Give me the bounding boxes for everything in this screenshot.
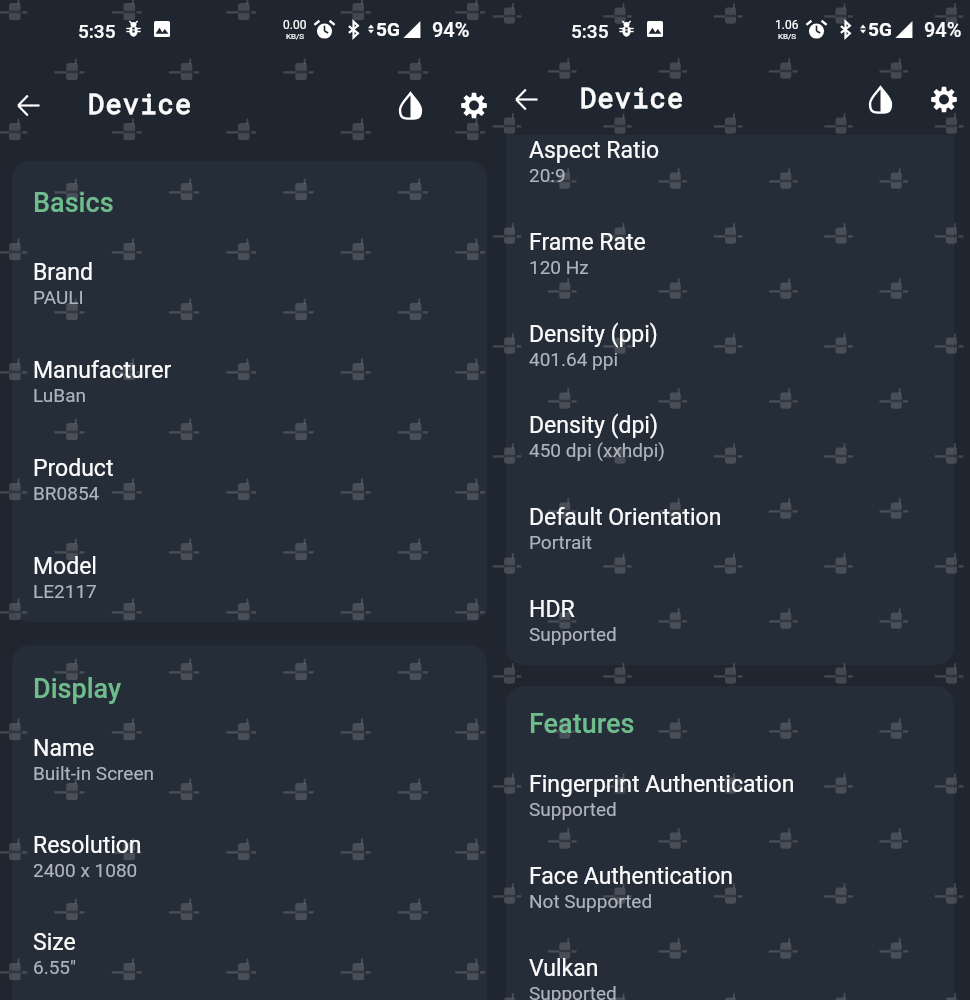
staticText: 5G (868, 18, 892, 40)
staticText: LE2117 (33, 580, 97, 602)
button[interactable]: Back (499, 72, 553, 126)
staticText: 401.64 ppi (529, 348, 619, 370)
staticText: Vulkan (529, 955, 599, 982)
staticText: 94% (432, 18, 470, 41)
button[interactable]: Face Authentication (529, 863, 954, 912)
button[interactable]: Vulkan (529, 955, 954, 1000)
staticText: 5G (376, 18, 400, 40)
staticText: Face Authentication (529, 863, 734, 890)
staticText: KB/S (286, 32, 305, 41)
staticText: Manufacturer (33, 357, 172, 384)
button[interactable]: Product (33, 455, 487, 504)
button[interactable]: Manufacturer (33, 357, 487, 406)
staticText: 6.55" (33, 956, 77, 978)
staticText: Model (33, 553, 97, 580)
staticText: Fingerprint Authentication (529, 771, 795, 798)
staticText: Not Supported (529, 890, 653, 912)
staticText: PAULI (33, 286, 84, 308)
staticText: Portrait (529, 531, 593, 553)
staticText: Supported (529, 623, 617, 645)
button[interactable]: Model (33, 553, 487, 602)
staticText: LuBan (33, 384, 86, 406)
staticText: HDR (529, 596, 575, 623)
button[interactable]: Name (33, 735, 487, 784)
staticText: 450 dpi (xxhdpi) (529, 439, 665, 461)
button[interactable]: Theme (385, 80, 435, 130)
button[interactable]: Frame Rate (529, 229, 954, 278)
staticText: Resolution (33, 832, 142, 859)
button[interactable]: Resolution (33, 832, 487, 881)
staticText: Display (33, 673, 122, 705)
button[interactable]: Back (1, 78, 55, 132)
button[interactable]: Default Orientation (529, 504, 954, 553)
staticText: Built-in Screen (33, 762, 154, 784)
staticText: Name (33, 735, 95, 762)
staticText: Default Orientation (529, 504, 722, 531)
button[interactable]: Density (dpi) (529, 412, 954, 461)
staticText: Device (88, 86, 193, 122)
staticText: 94% (924, 18, 962, 41)
staticText: 20:9 (529, 164, 566, 186)
staticText: 2400 x 1080 (33, 859, 138, 881)
staticText: Features (529, 708, 635, 740)
button[interactable]: Brand (33, 259, 487, 308)
staticText: Product (33, 455, 114, 482)
staticText: Frame Rate (529, 229, 646, 256)
staticText: Basics (33, 187, 114, 219)
staticText: Supported (529, 982, 617, 1000)
staticText: 1.06 (775, 18, 799, 32)
button[interactable]: Theme (855, 74, 905, 124)
staticText: KB/S (778, 32, 797, 41)
staticText: Density (ppi) (529, 321, 658, 348)
staticText: 5:35 (78, 20, 116, 42)
staticText: Size (33, 929, 76, 956)
button[interactable]: Aspect Ratio (529, 137, 954, 186)
staticText: Aspect Ratio (529, 137, 660, 164)
button[interactable]: Settings (449, 80, 499, 130)
button[interactable]: Density (ppi) (529, 321, 954, 370)
staticText: 0.00 (283, 18, 307, 32)
staticText: BR0854 (33, 482, 100, 504)
button[interactable]: Settings (919, 74, 969, 124)
staticText: 120 Hz (529, 256, 589, 278)
staticText: 5:35 (571, 20, 609, 42)
staticText: Device (580, 80, 685, 116)
button[interactable]: Fingerprint Authentication (529, 771, 954, 820)
staticText: Supported (529, 798, 617, 820)
staticText: Density (dpi) (529, 412, 658, 439)
button[interactable]: HDR (529, 596, 954, 645)
staticText: Brand (33, 259, 93, 286)
button[interactable]: Size (33, 929, 487, 978)
